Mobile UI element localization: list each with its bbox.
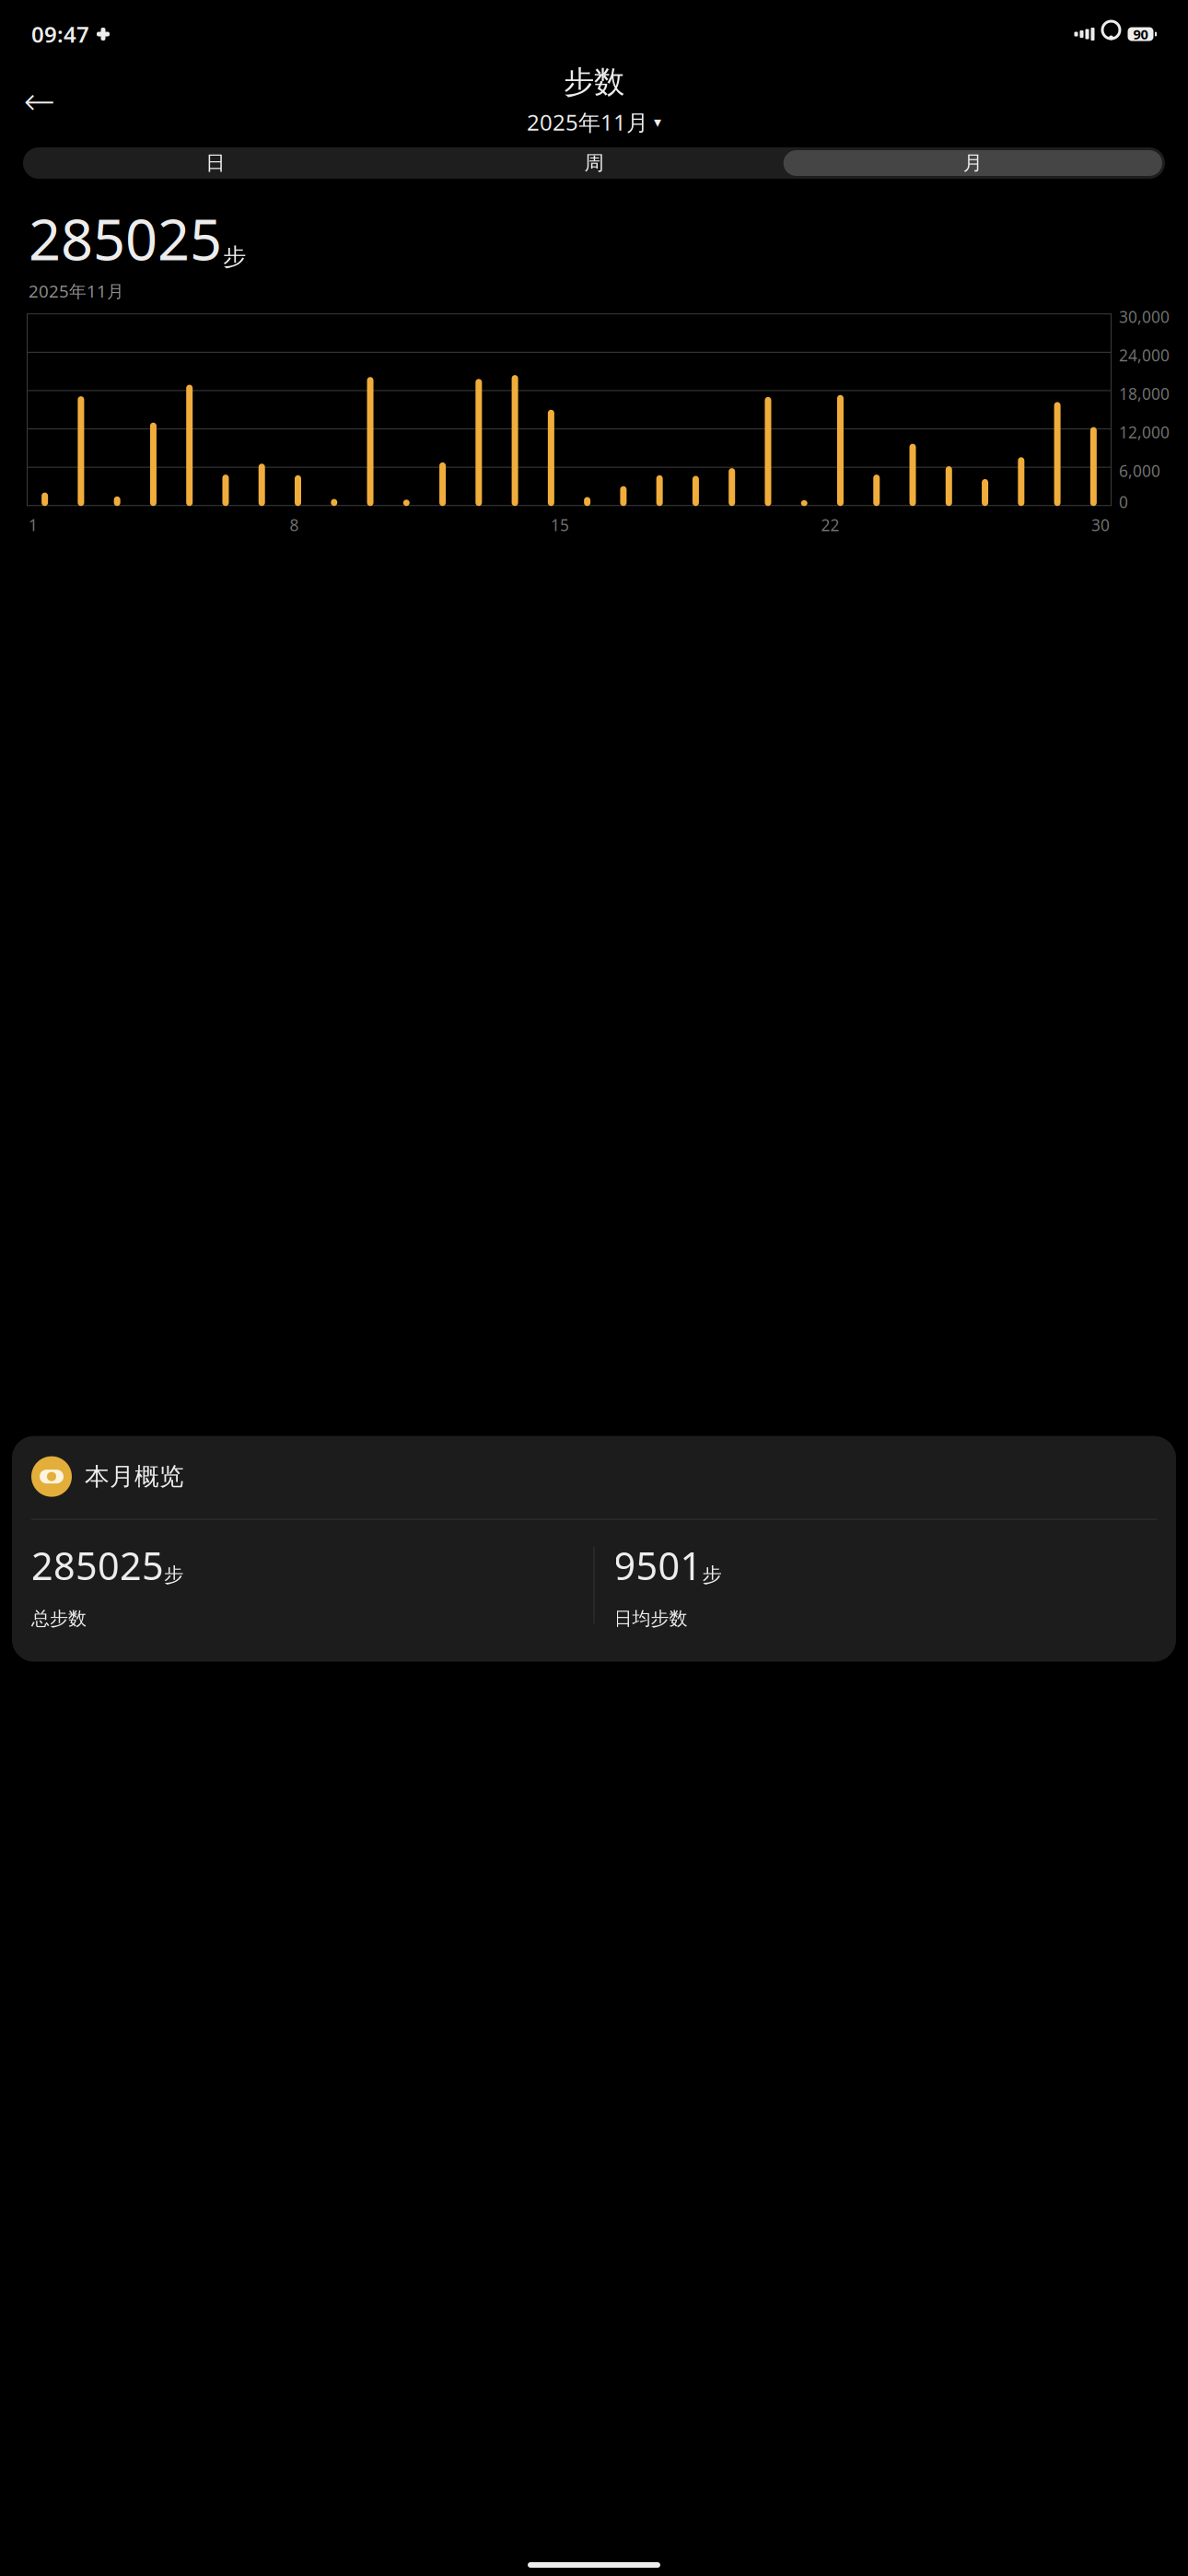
staticText: 2025年11月	[527, 107, 648, 137]
button[interactable]: Back	[17, 78, 63, 124]
staticText: ▾	[654, 114, 661, 130]
staticText: 6,000	[1119, 460, 1160, 481]
staticText: 日	[206, 151, 225, 175]
staticText: 30,000	[1119, 306, 1170, 327]
staticText: 周	[584, 151, 604, 175]
staticText: 24,000	[1119, 345, 1170, 366]
button[interactable]: 周	[405, 150, 783, 176]
staticText: 285025	[29, 201, 222, 276]
staticText: 12,000	[1119, 422, 1170, 443]
staticText: 30	[1091, 514, 1110, 535]
staticText: 8	[290, 514, 299, 535]
staticText: 本月概览	[85, 1461, 184, 1492]
staticText: 步数	[564, 63, 624, 101]
staticText: 9501	[614, 1540, 702, 1591]
staticText: 285025	[31, 1540, 164, 1591]
staticText: 0	[1119, 491, 1128, 512]
staticText: 22	[821, 514, 839, 535]
staticText: 1	[29, 514, 38, 535]
staticText: 日均步数	[614, 1607, 687, 1630]
button[interactable]: 2025年11月	[519, 105, 669, 139]
staticText: 总步数	[31, 1607, 87, 1630]
staticText: 月	[963, 151, 982, 175]
staticText: 步	[702, 1563, 722, 1587]
staticText: 步	[223, 243, 246, 271]
button[interactable]: 日	[26, 150, 405, 176]
staticText: 步	[164, 1563, 183, 1587]
staticText: 15	[551, 514, 569, 535]
staticText: 09:47	[31, 19, 89, 49]
staticText: 18,000	[1119, 383, 1170, 404]
button[interactable]: 月	[783, 150, 1162, 176]
staticText: 2025年11月	[29, 280, 124, 302]
staticText: 90	[1133, 25, 1148, 43]
staticText: ←	[23, 80, 56, 123]
